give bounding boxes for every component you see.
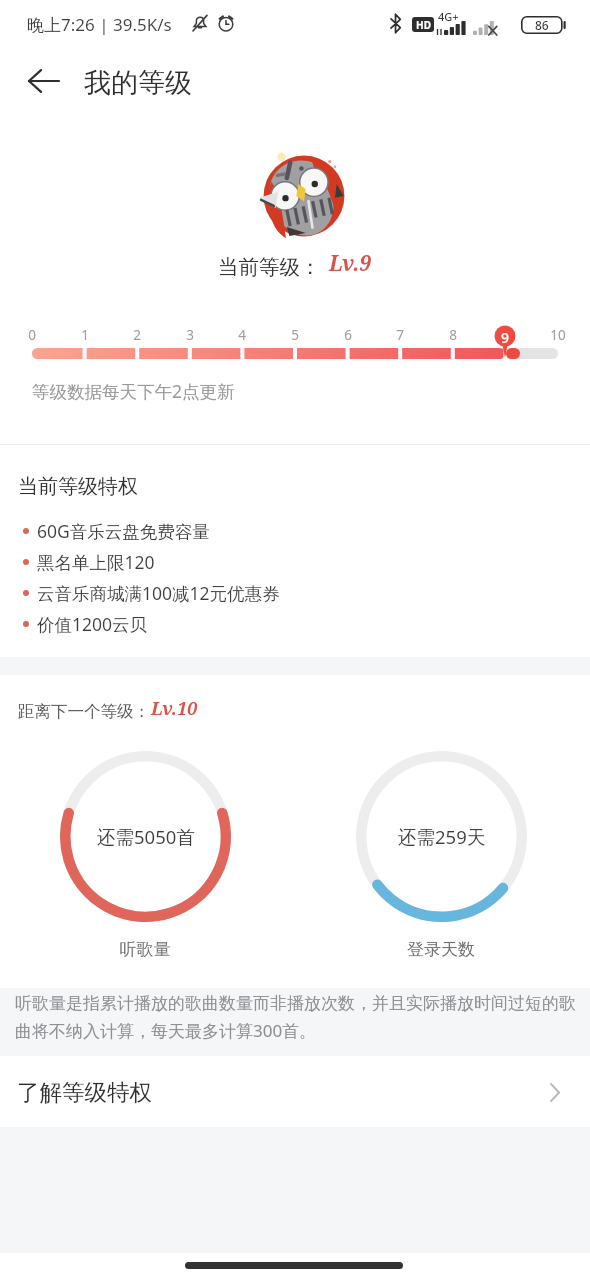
staticText: 我的等级 bbox=[84, 66, 192, 100]
staticText: 9 bbox=[501, 328, 510, 347]
staticText: 还需259天 bbox=[398, 824, 486, 849]
button[interactable]: 了解等级特权 bbox=[0, 1058, 590, 1126]
button[interactable]: Back bbox=[12, 52, 74, 110]
staticText: 听歌量是指累计播放的歌曲数量而非播放次数，并且实际播放时间过短的歌曲将不纳入计算… bbox=[15, 993, 576, 1042]
staticText: 7 bbox=[396, 326, 404, 344]
staticText: 6 bbox=[344, 326, 352, 344]
staticText: 当前等级： bbox=[218, 254, 321, 280]
staticText: 听歌量 bbox=[85, 939, 205, 960]
staticText: 3 bbox=[186, 326, 194, 344]
staticText: 当前等级特权 bbox=[18, 474, 138, 499]
staticText: 等级数据每天下午2点更新 bbox=[32, 379, 235, 403]
staticText: 还需5050首 bbox=[97, 824, 195, 849]
staticText: 5 bbox=[291, 326, 299, 344]
staticText: 4 bbox=[238, 326, 246, 344]
staticText: 云音乐商城满100减12元优惠券 bbox=[37, 581, 280, 605]
staticText: 了解等级特权 bbox=[17, 1078, 152, 1106]
staticText: 86 bbox=[535, 17, 549, 33]
staticText: 晚上7:26 | 39.5K/s bbox=[27, 13, 172, 36]
staticText: 8 bbox=[449, 326, 457, 344]
staticText: 10 bbox=[550, 326, 566, 344]
staticText: 黑名单上限120 bbox=[37, 550, 155, 574]
staticText: 距离下一个等级： bbox=[18, 701, 150, 722]
staticText: HD bbox=[416, 18, 431, 32]
staticText: 2 bbox=[133, 326, 141, 344]
staticText: 4G+ bbox=[438, 9, 459, 24]
staticText: 60G音乐云盘免费容量 bbox=[37, 519, 210, 543]
staticText: 1 bbox=[81, 326, 89, 344]
staticText: Lv.10 bbox=[151, 696, 198, 721]
staticText: Lv.9 bbox=[329, 249, 372, 278]
staticText: 0 bbox=[28, 326, 36, 344]
staticText: 登录天数 bbox=[381, 939, 501, 960]
staticText: 价值1200云贝 bbox=[37, 612, 148, 636]
